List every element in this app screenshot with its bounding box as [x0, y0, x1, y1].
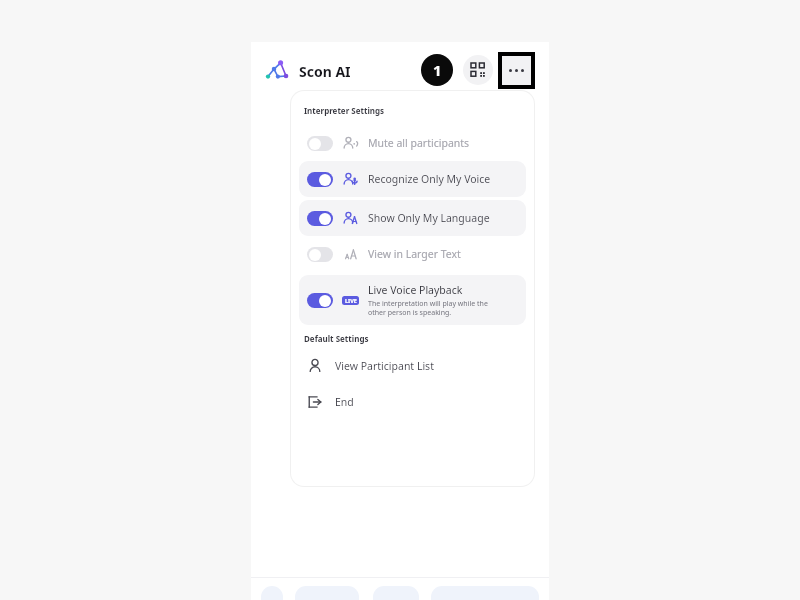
staticText: Recognize Only My Voice: [368, 172, 491, 186]
button[interactable]: Scan QR code: [463, 55, 493, 85]
staticText: Interpreter Settings: [304, 105, 385, 116]
button[interactable]: Action 1: [261, 586, 283, 600]
button[interactable]: Off: [299, 236, 526, 272]
staticText: LIVE: [345, 297, 357, 304]
button[interactable]: Action 2: [295, 586, 359, 600]
staticText: Mute all participants: [368, 136, 470, 150]
staticText: Live Voice Playback: [368, 283, 463, 297]
button[interactable]: On: [307, 211, 333, 226]
button[interactable]: End: [299, 390, 526, 414]
staticText: The interpretation will play while the o…: [368, 299, 488, 317]
button[interactable]: On: [299, 161, 526, 197]
button[interactable]: More options: [502, 56, 531, 85]
button[interactable]: Off: [299, 125, 526, 161]
button[interactable]: On: [299, 275, 526, 325]
button[interactable]: 1: [421, 54, 453, 86]
staticText: Show Only My Language: [368, 211, 490, 225]
button[interactable]: On: [299, 200, 526, 236]
staticText: View Participant List: [335, 359, 434, 373]
staticText: Scon AI: [299, 62, 351, 81]
button[interactable]: Off: [307, 136, 333, 151]
staticText: End: [335, 395, 354, 409]
button[interactable]: Action 3: [373, 586, 419, 600]
staticText: Default Settings: [304, 333, 369, 344]
button[interactable]: Off: [307, 247, 333, 262]
button[interactable]: On: [307, 293, 333, 308]
staticText: View in Larger Text: [368, 247, 461, 261]
other: Scon AI logo: [262, 55, 292, 85]
button[interactable]: View Participant List: [299, 354, 526, 378]
button[interactable]: On: [307, 172, 333, 187]
staticText: 1: [433, 60, 442, 80]
